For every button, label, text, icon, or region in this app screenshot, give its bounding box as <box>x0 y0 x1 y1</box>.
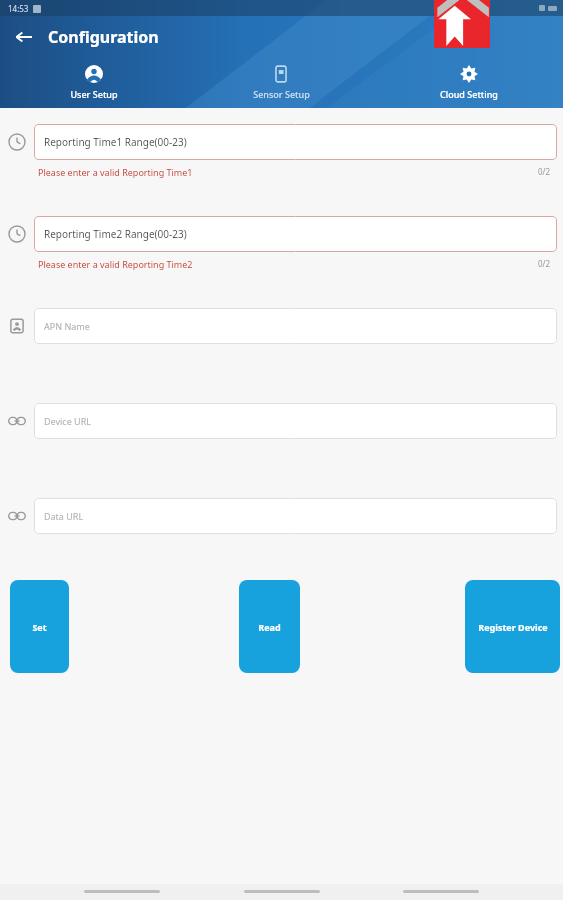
staticText: Please enter a valid Reporting Time1 <box>38 166 538 178</box>
button[interactable]: APN Name <box>34 308 557 344</box>
staticText: Reporting Time2 Range(00-23) <box>44 227 187 241</box>
button[interactable]: Sensor Setup <box>187 61 375 104</box>
button[interactable]: Cloud Setting <box>375 61 563 104</box>
staticText: 0/2 <box>538 258 551 269</box>
button[interactable]: Navigation <box>403 890 479 893</box>
staticText: Register Device <box>478 621 548 633</box>
staticText: Reporting Time1 Range(00-23) <box>44 135 187 149</box>
button[interactable]: Reporting Time1 Range(00-23) <box>34 124 557 160</box>
staticText: Cloud Setting <box>440 88 498 100</box>
button[interactable]: Navigation <box>84 890 160 893</box>
button[interactable]: Back <box>8 21 40 53</box>
staticText: Read <box>258 621 281 633</box>
button[interactable]: Device URL <box>34 403 557 439</box>
button[interactable]: Navigation <box>244 890 320 893</box>
staticText: Data URL <box>44 510 84 522</box>
button[interactable]: Read <box>239 580 300 673</box>
staticText: APN Name <box>44 320 90 332</box>
staticText: 14:53 <box>8 3 29 14</box>
staticText: User Setup <box>70 88 118 100</box>
button[interactable]: Register Device <box>465 580 560 673</box>
staticText: Set <box>32 621 47 633</box>
button[interactable]: Data URL <box>34 498 557 534</box>
staticText: 0/2 <box>538 166 551 177</box>
other: App logo <box>434 0 490 48</box>
staticText: Device URL <box>44 415 91 427</box>
staticText: Configuration <box>48 26 159 48</box>
staticText: Please enter a valid Reporting Time2 <box>38 258 538 270</box>
staticText: Sensor Setup <box>253 88 310 100</box>
button[interactable]: User Setup <box>0 61 187 104</box>
button[interactable]: Set <box>10 580 69 673</box>
button[interactable]: Reporting Time2 Range(00-23) <box>34 216 557 252</box>
